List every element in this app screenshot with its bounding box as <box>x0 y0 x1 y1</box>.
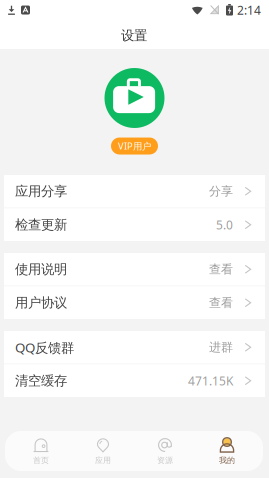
staticText: QQ反馈群 <box>15 338 74 356</box>
button[interactable]: QQ反馈群 <box>4 331 265 363</box>
staticText: 应用 <box>95 455 111 465</box>
staticText: 分享 <box>209 184 233 199</box>
staticText: 进群 <box>209 340 233 355</box>
staticText: 5.0 <box>216 217 233 233</box>
staticText: VIP用户 <box>118 140 151 152</box>
staticText: 2:14 <box>237 2 261 18</box>
staticText: 查看 <box>209 262 233 277</box>
button[interactable]: 用户协议 <box>4 286 265 319</box>
button[interactable]: 检查更新 <box>4 208 265 241</box>
staticText: 我的 <box>219 455 235 465</box>
staticText: 首页 <box>33 455 49 465</box>
button[interactable]: 清空缓存 <box>4 364 265 397</box>
button[interactable]: 应用 <box>72 431 134 471</box>
button[interactable]: 首页 <box>10 431 72 471</box>
staticText: 查看 <box>209 295 233 310</box>
button[interactable]: 我的 <box>196 431 258 471</box>
button[interactable]: 资源 <box>134 431 196 471</box>
staticText: 471.15K <box>188 373 233 389</box>
staticText: 检查更新 <box>15 217 67 233</box>
staticText: 清空缓存 <box>15 373 67 389</box>
staticText: 用户协议 <box>15 295 67 311</box>
button[interactable]: 应用分享 <box>4 175 265 207</box>
button[interactable]: 使用说明 <box>4 253 265 285</box>
staticText: 资源 <box>157 455 173 465</box>
staticText: 设置 <box>121 27 147 44</box>
staticText: 使用说明 <box>15 261 67 277</box>
staticText: 应用分享 <box>15 183 67 199</box>
